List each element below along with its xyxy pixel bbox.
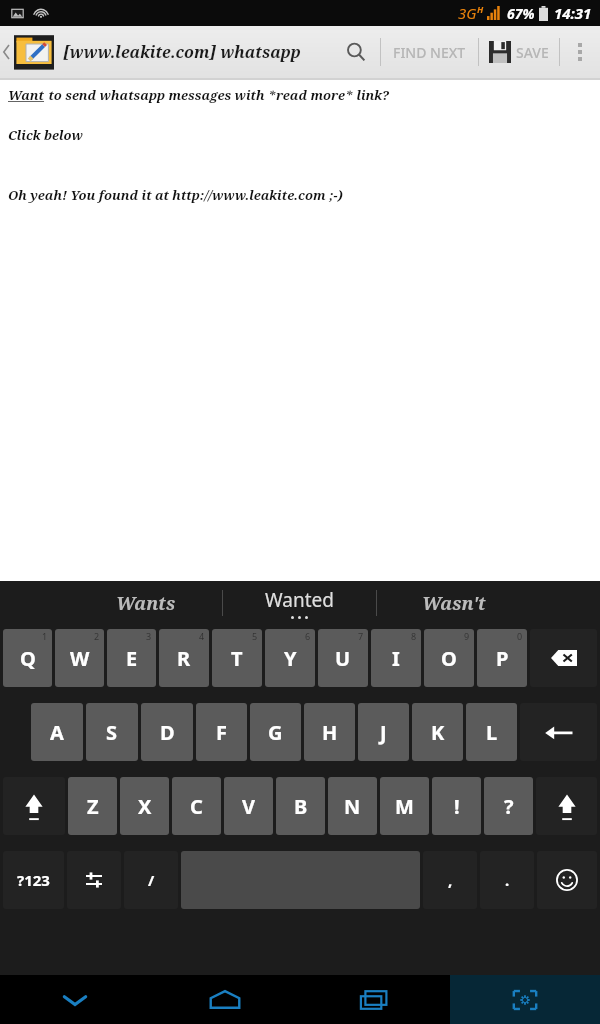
staticText: , [448,870,453,890]
staticText: Oh yeah! You found it at http://www.leak… [8,186,343,204]
staticText: I [392,645,400,672]
staticText: X [138,793,152,820]
button[interactable]: Home [150,975,300,1024]
staticText: FIND NEXT [393,43,466,62]
button[interactable]: V [224,777,273,835]
button[interactable]: G [250,703,301,761]
staticText: 4 [199,630,205,642]
button[interactable]: ? [484,777,533,835]
button[interactable]: P [477,629,527,687]
staticText: . [505,870,510,890]
button[interactable]: Back [0,26,14,78]
staticText: L [486,719,498,746]
staticText: Wants [116,591,176,616]
staticText: T [231,645,243,672]
button[interactable]: Enter [520,703,597,761]
staticText: E [126,645,138,672]
staticText: Wasn't [422,591,486,616]
staticText: Wanted [265,587,334,613]
staticText: 8 [411,630,417,642]
button[interactable]: M [380,777,429,835]
button[interactable]: SAVE [479,26,559,78]
staticText: 7 [358,630,364,642]
staticText: W [70,645,90,672]
staticText: 0 [517,630,523,642]
staticText: ?123 [17,870,50,890]
staticText: H [322,719,338,746]
button[interactable]: . [480,851,534,909]
button[interactable]: S [86,703,138,761]
button[interactable]: F [196,703,247,761]
button[interactable]: O [424,629,474,687]
button[interactable]: Wanted [223,581,376,625]
staticText: G [268,719,283,746]
staticText: J [380,719,387,746]
staticText: C [190,793,203,820]
staticText: 6 [305,630,311,642]
button[interactable]: N [328,777,377,835]
staticText: 5 [252,630,258,642]
button[interactable]: I [371,629,421,687]
button[interactable]: A [31,703,83,761]
staticText: K [431,719,445,746]
button[interactable]: K [412,703,463,761]
button[interactable]: Q [3,629,52,687]
staticText: 14:31 [554,3,592,23]
button[interactable]: Z [68,777,117,835]
staticText: B [294,793,308,820]
button[interactable]: X [120,777,169,835]
staticText: Want [8,86,45,104]
staticText: H [477,3,484,15]
staticText: 67% [507,4,535,23]
staticText: ! [454,793,460,820]
staticText: P [496,645,509,672]
button[interactable]: W [55,629,104,687]
button[interactable]: / [124,851,178,909]
staticText: F [216,719,227,746]
button[interactable]: H [304,703,355,761]
staticText: SAVE [516,43,549,62]
button[interactable]: Screenshot [450,975,600,1024]
staticText: R [177,645,191,672]
button[interactable]: Wasn't [377,581,530,625]
button[interactable]: Backspace [530,629,597,687]
staticText: D [160,719,175,746]
staticText: Y [284,645,297,672]
button[interactable]: Search [332,26,380,78]
button[interactable]: , [423,851,477,909]
staticText: ? [504,793,514,820]
button[interactable]: B [276,777,325,835]
staticText: N [344,793,361,820]
staticText: V [242,793,255,820]
staticText: 1 [42,630,48,642]
button[interactable]: Keyboard settings [67,851,121,909]
button[interactable]: Hide keyboard [0,975,150,1024]
button[interactable]: Shift [536,777,597,835]
button[interactable]: ?123 [3,851,64,909]
button[interactable]: J [358,703,409,761]
button[interactable]: Y [265,629,315,687]
staticText: to send whatsapp messages with *read mor… [45,86,390,104]
button[interactable]: U [318,629,368,687]
staticText: M [395,793,414,820]
button[interactable]: Shift [3,777,65,835]
button[interactable]: FIND NEXT [381,26,478,78]
staticText: U [335,645,351,672]
button[interactable]: ! [432,777,481,835]
button[interactable]: Emoji [537,851,597,909]
staticText: Click below [8,126,83,144]
button[interactable]: D [141,703,193,761]
staticText: / [148,870,155,890]
staticText: 3 [146,630,152,642]
staticText: Z [87,793,99,820]
button[interactable]: Recent apps [300,975,450,1024]
button[interactable]: L [466,703,517,761]
button[interactable]: C [172,777,221,835]
staticText: A [50,719,64,746]
button[interactable]: More options [560,26,600,78]
button[interactable]: E [107,629,156,687]
button[interactable]: Wants [70,581,222,625]
button[interactable]: R [159,629,209,687]
button[interactable]: T [212,629,262,687]
